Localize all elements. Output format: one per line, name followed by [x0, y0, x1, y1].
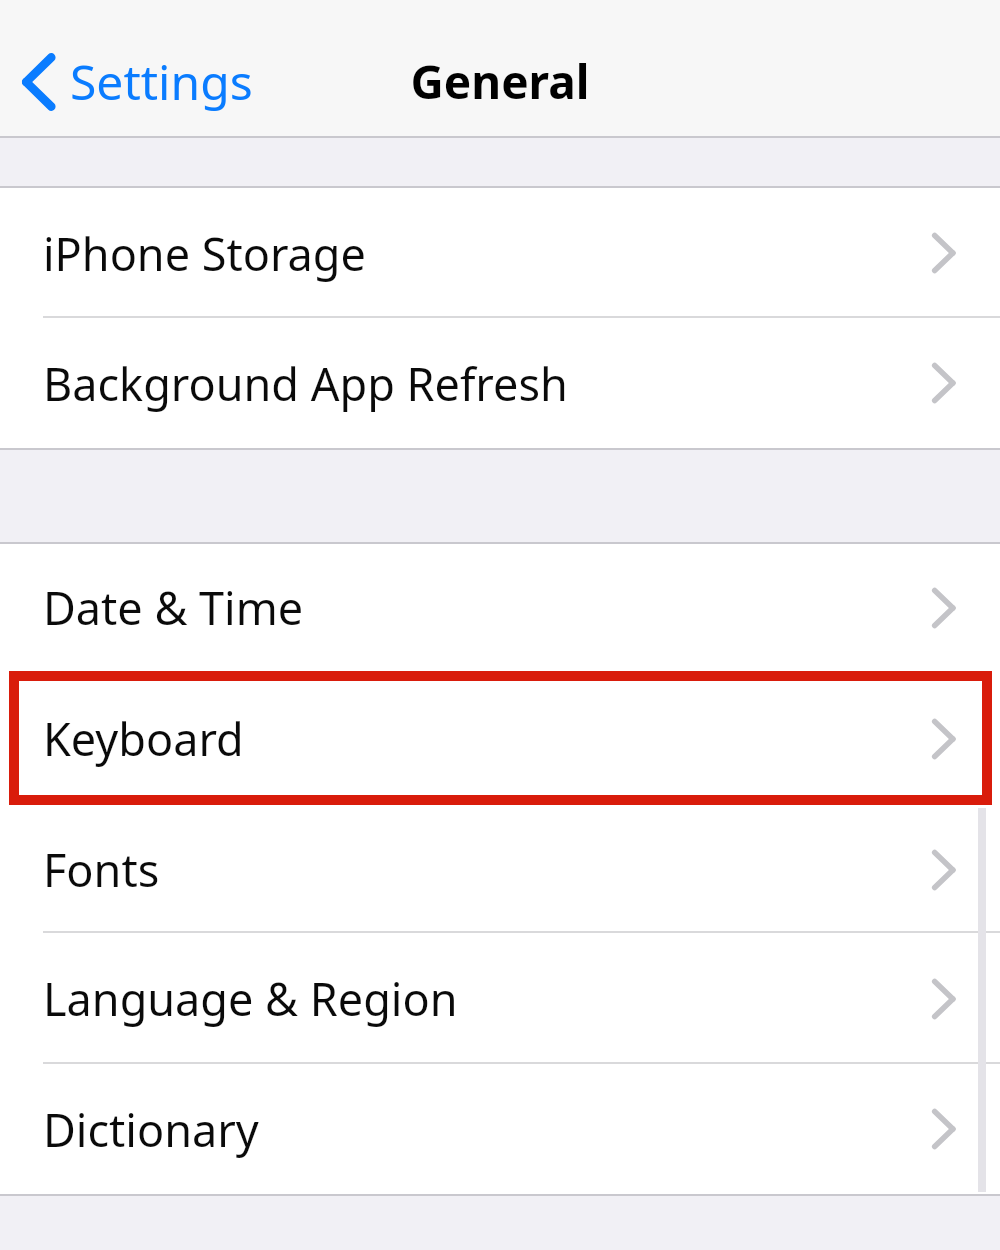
button[interactable]: Background App Refresh [0, 318, 1000, 448]
button[interactable]: Settings [0, 43, 267, 120]
button[interactable]: iPhone Storage [0, 188, 1000, 318]
staticText: Fonts [43, 839, 930, 900]
staticText: Dictionary [43, 1099, 930, 1160]
staticText: General [410, 50, 590, 113]
staticText: Settings [70, 49, 253, 114]
button[interactable]: Dictionary [0, 1064, 1000, 1194]
staticText: Language & Region [43, 968, 930, 1029]
button[interactable]: Keyboard [0, 671, 1000, 806]
staticText: Keyboard [43, 708, 930, 769]
staticText: Background App Refresh [43, 353, 930, 414]
button[interactable]: Fonts [0, 806, 1000, 933]
button[interactable]: Language & Region [0, 933, 1000, 1064]
staticText: iPhone Storage [43, 223, 930, 284]
staticText: Date & Time [43, 577, 930, 638]
button[interactable]: Date & Time [0, 544, 1000, 671]
